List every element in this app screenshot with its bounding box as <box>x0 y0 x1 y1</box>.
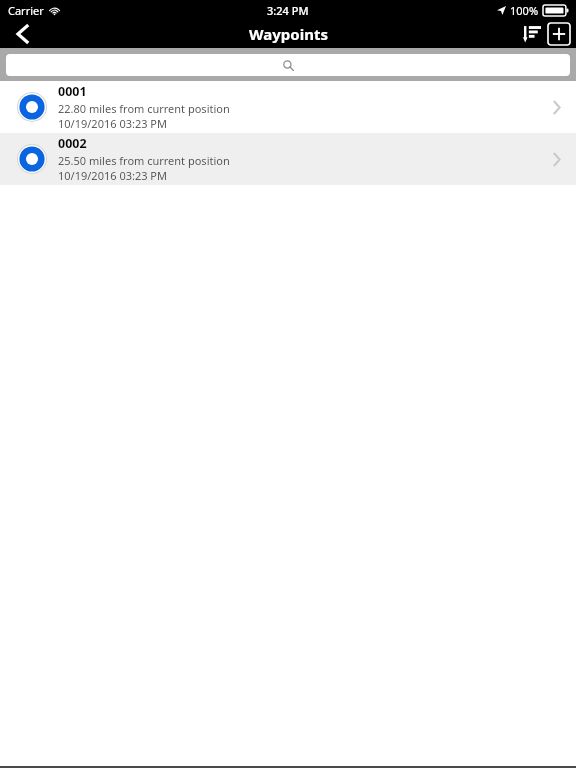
staticText: 3:24 PM <box>267 3 309 18</box>
staticText: 0001 <box>58 83 87 100</box>
button[interactable]: Back <box>0 20 44 48</box>
button[interactable]: Sort <box>514 20 548 48</box>
button[interactable]: Add <box>548 23 570 45</box>
button[interactable]: 0001 <box>0 81 576 133</box>
button[interactable]: 0002 <box>0 133 576 185</box>
staticText: Waypoints <box>249 24 328 44</box>
staticText: 100% <box>510 3 539 18</box>
staticText: Carrier <box>8 3 44 18</box>
staticText: 0002 <box>58 135 87 152</box>
staticText: 25.50 miles from current position <box>58 153 230 168</box>
staticText: 10/19/2016 03:23 PM <box>58 168 167 183</box>
staticText: 22.80 miles from current position <box>58 101 230 116</box>
staticText: 10/19/2016 03:23 PM <box>58 116 167 131</box>
button[interactable] <box>6 54 570 76</box>
